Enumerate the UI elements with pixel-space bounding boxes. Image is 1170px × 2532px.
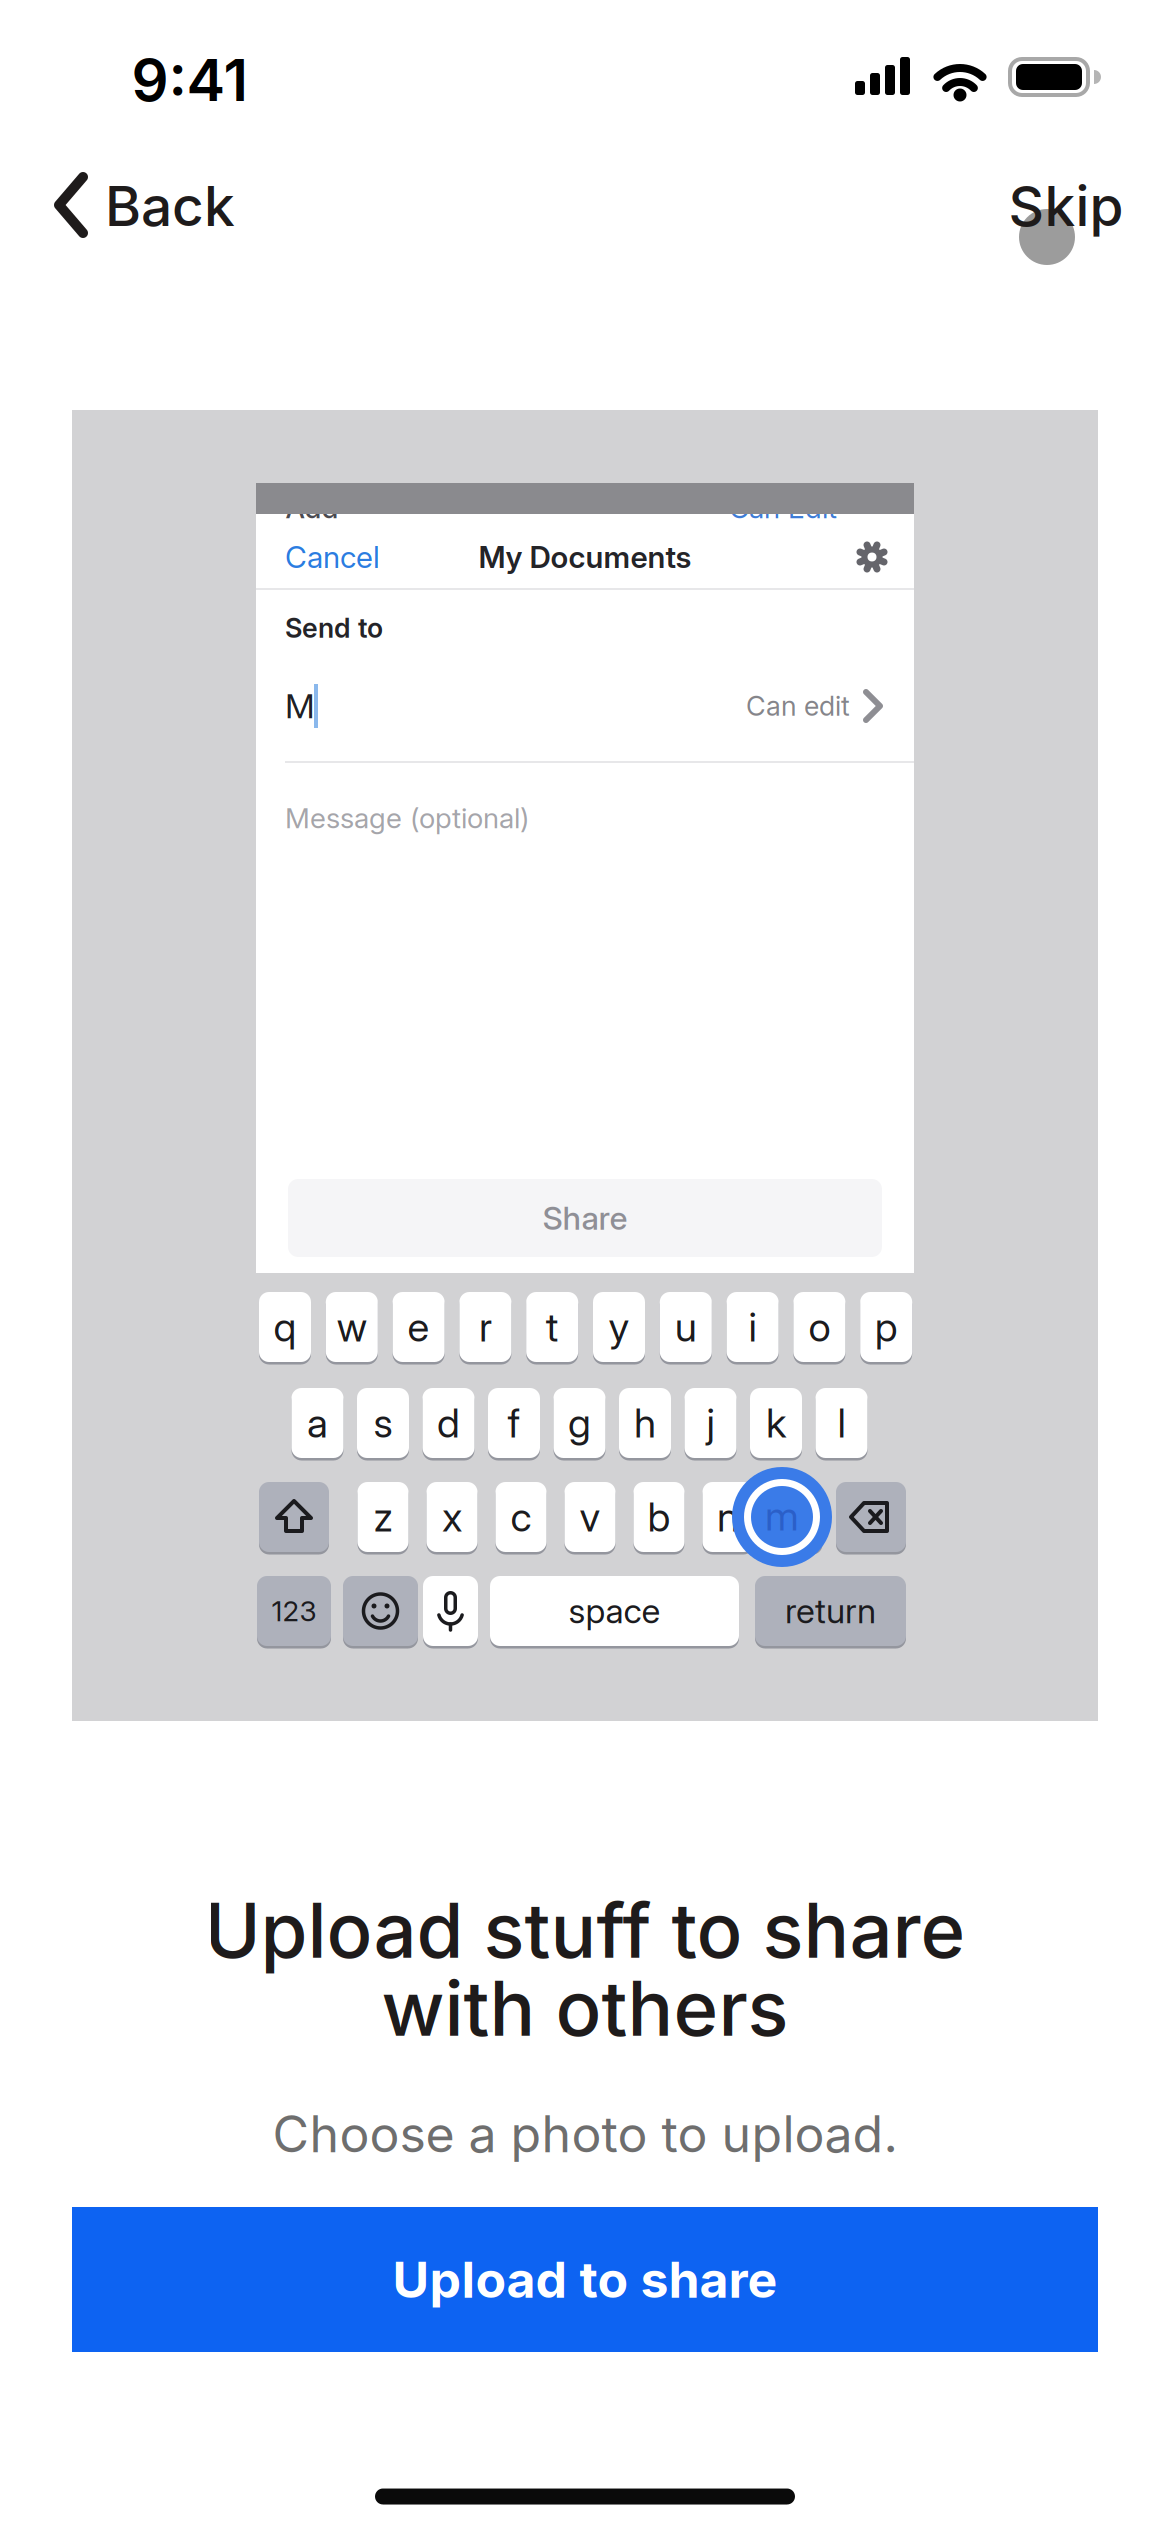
- staticText: Can edit: [746, 690, 850, 722]
- staticText: Can Edit: [729, 491, 837, 525]
- staticText: Message (optional): [285, 801, 529, 835]
- staticText: Upload to share: [392, 2249, 777, 2310]
- staticText: Back: [105, 173, 235, 239]
- staticText: 9:41: [131, 45, 248, 115]
- staticText: g: [568, 1399, 591, 1447]
- staticText: w: [337, 1303, 367, 1351]
- staticText: Share: [542, 1199, 627, 1237]
- staticText: M: [285, 685, 315, 726]
- staticText: p: [875, 1303, 898, 1351]
- staticText: Choose a photo to upload.: [272, 2104, 897, 2164]
- staticText: d: [437, 1399, 460, 1447]
- button[interactable]: Upload to share: [72, 2207, 1098, 2352]
- staticText: b: [647, 1493, 670, 1541]
- staticText: Add: [285, 491, 338, 525]
- staticText: n: [717, 1493, 739, 1541]
- staticText: m: [765, 1492, 799, 1540]
- staticText: Send to: [285, 612, 383, 644]
- staticText: space: [568, 1590, 660, 1631]
- staticText: with others: [381, 1962, 788, 2054]
- staticText: a: [307, 1399, 328, 1447]
- staticText: h: [634, 1399, 656, 1447]
- staticText: r: [479, 1303, 492, 1351]
- staticText: Cancel: [285, 539, 380, 575]
- staticText: s: [373, 1399, 392, 1447]
- staticText: z: [373, 1493, 392, 1541]
- staticText: q: [273, 1303, 296, 1351]
- staticText: v: [579, 1493, 600, 1541]
- staticText: 123: [271, 1594, 316, 1628]
- button[interactable]: Back: [57, 173, 235, 239]
- staticText: i: [749, 1303, 757, 1351]
- staticText: t: [546, 1303, 559, 1351]
- staticText: l: [837, 1399, 845, 1447]
- staticText: Skip: [1008, 173, 1123, 239]
- staticText: k: [766, 1399, 786, 1447]
- button[interactable]: Skip: [1008, 173, 1123, 239]
- staticText: j: [706, 1399, 714, 1447]
- staticText: c: [510, 1493, 531, 1541]
- staticText: o: [808, 1303, 830, 1351]
- staticText: Upload stuff to share: [204, 1884, 965, 1976]
- staticText: m: [780, 1493, 814, 1541]
- staticText: x: [442, 1493, 462, 1541]
- staticText: u: [675, 1303, 697, 1351]
- staticText: return: [785, 1590, 876, 1631]
- staticText: My Documents: [478, 539, 691, 575]
- staticText: f: [507, 1399, 520, 1447]
- staticText: e: [408, 1303, 430, 1351]
- staticText: y: [608, 1303, 629, 1351]
